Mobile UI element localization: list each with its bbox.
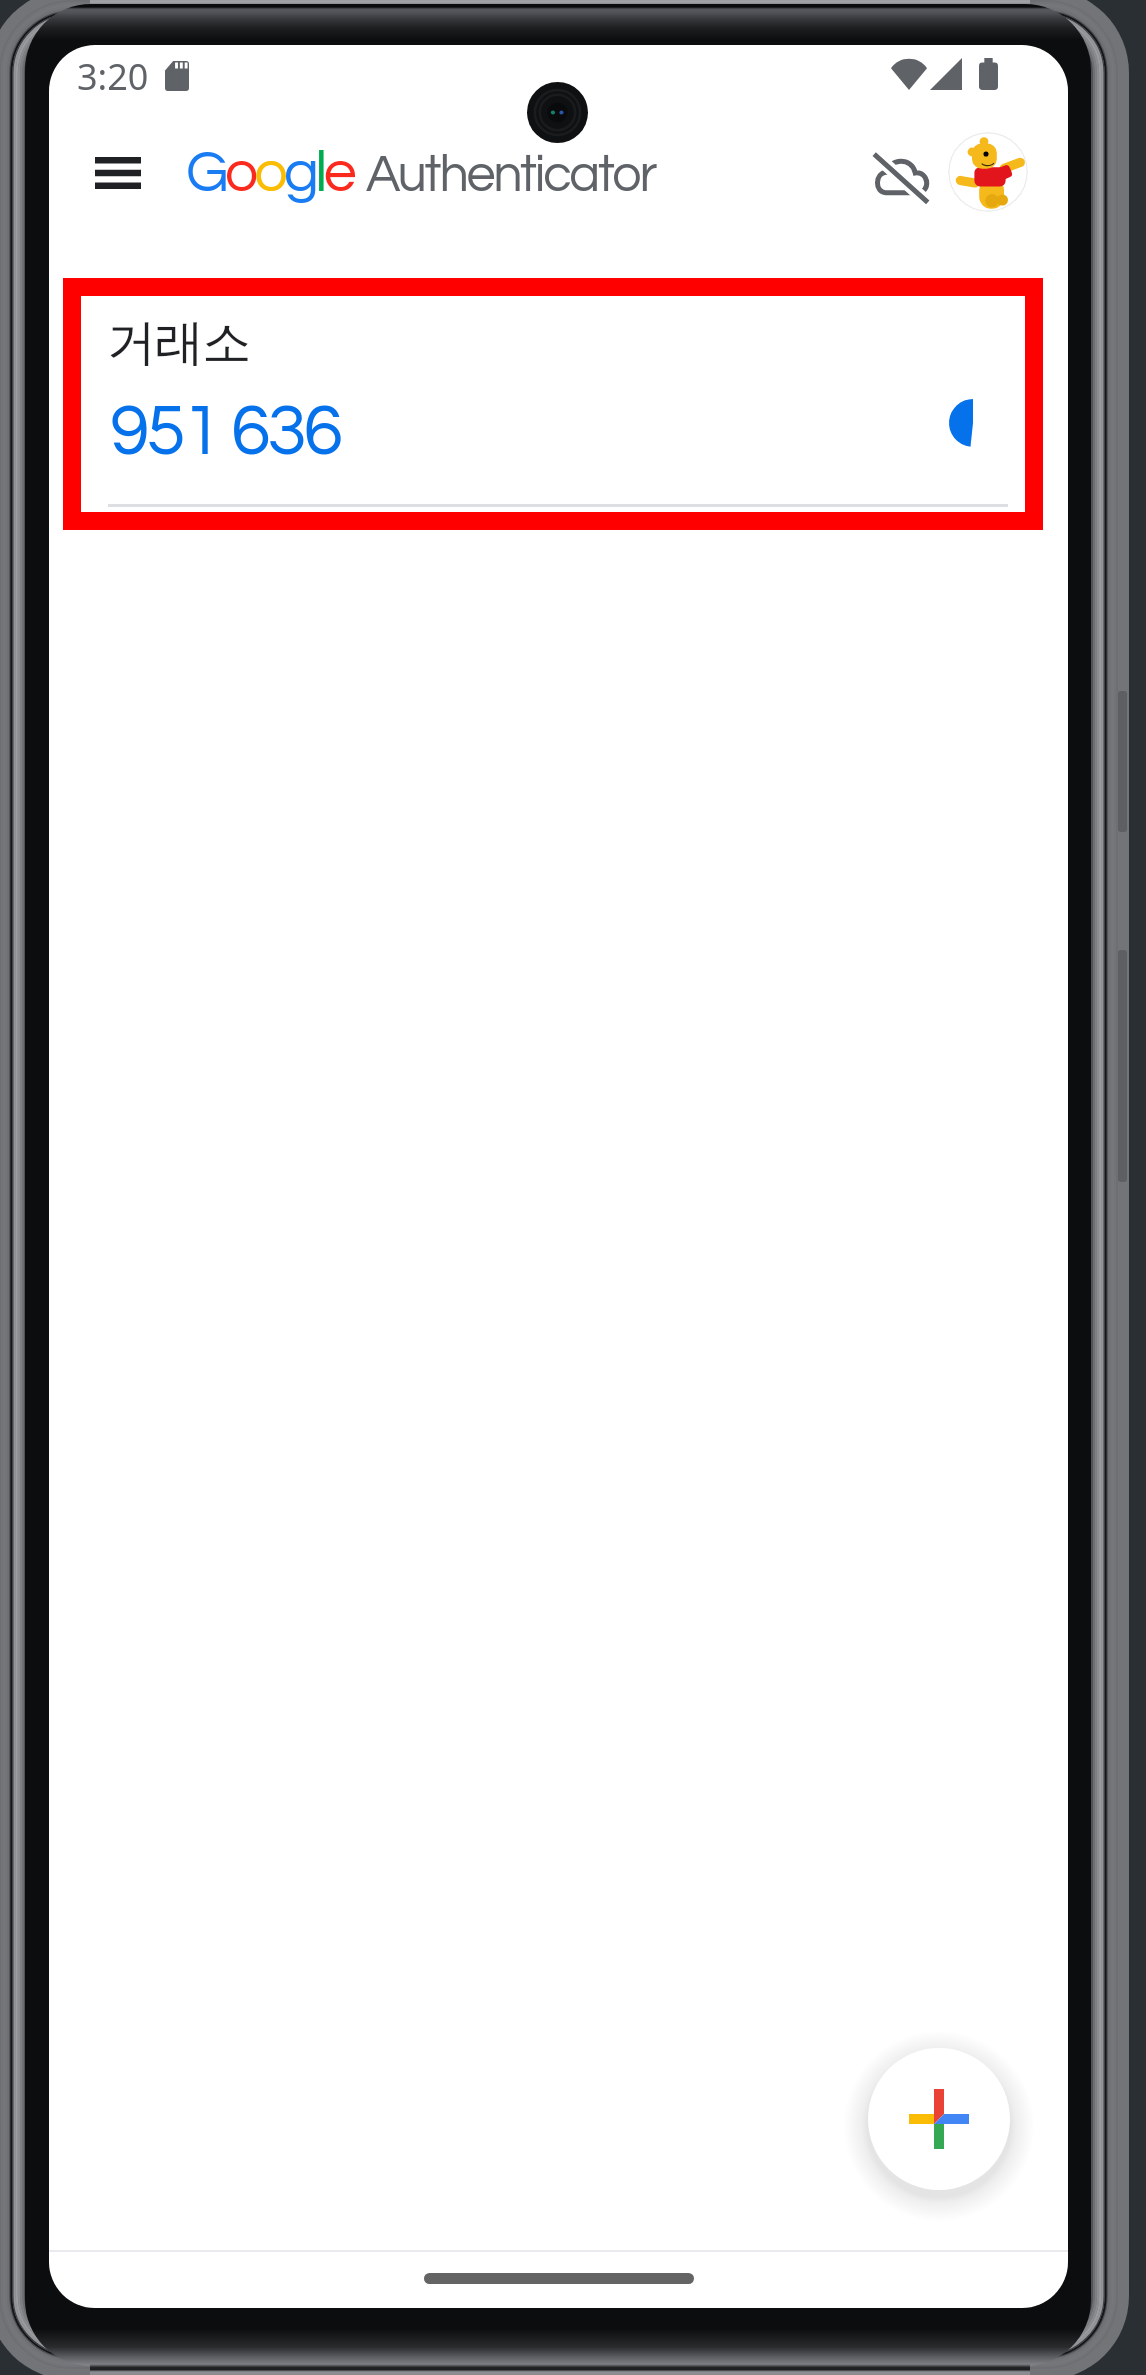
staticText: Google bbox=[186, 143, 353, 204]
button[interactable]: Account profile bbox=[948, 132, 1028, 212]
staticText: 거래소 bbox=[107, 312, 251, 374]
button[interactable]: Open navigation menu bbox=[73, 137, 163, 209]
button[interactable]: Add a code bbox=[868, 2048, 1010, 2190]
button[interactable]: Cloud sync disabled bbox=[857, 138, 945, 214]
staticText: Authenticator bbox=[366, 148, 656, 202]
button[interactable]: 거래소 bbox=[81, 296, 1025, 512]
staticText: 951 636 bbox=[110, 395, 340, 469]
staticText: 3:20 bbox=[77, 52, 149, 101]
